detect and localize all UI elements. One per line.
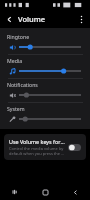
button[interactable]: Notifications: [7, 79, 83, 102]
button[interactable]: Recents: [0, 184, 30, 200]
button[interactable]: System: [7, 103, 83, 126]
staticText: Ringtone: [7, 33, 30, 40]
staticText: Notifications: [7, 81, 38, 88]
staticText: Control the media volume by default when…: [9, 146, 65, 156]
staticText: System: [7, 105, 25, 112]
staticText: Use Volume keys for media: [9, 138, 65, 145]
button[interactable]: Back: [0, 10, 18, 28]
button[interactable]: Ringtone: [7, 31, 83, 54]
button[interactable]: More options: [72, 10, 90, 28]
button[interactable]: Use Volume keys for media: [4, 134, 86, 160]
button[interactable]: Home: [30, 184, 60, 200]
button[interactable]: Back: [60, 184, 90, 200]
staticText: Media: [7, 57, 23, 64]
button[interactable]: Use Volume keys for media toggle: [68, 144, 81, 151]
staticText: Volume: [18, 14, 46, 24]
button[interactable]: Media: [7, 55, 83, 78]
